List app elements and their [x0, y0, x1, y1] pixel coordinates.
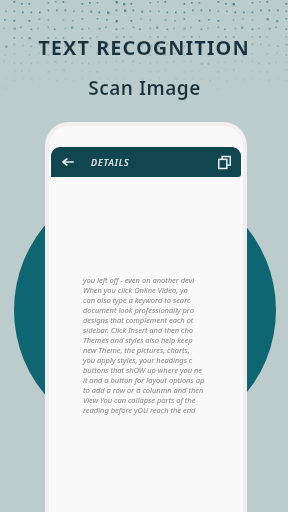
staticText: you left off - even on another devi [83, 275, 195, 285]
staticText: When you click Online Video, yo [83, 285, 188, 295]
button[interactable]: Copy [214, 152, 234, 172]
staticText: you apply styles, your headings c [83, 355, 193, 365]
staticText: sidebar. Click Insert and then cho [83, 325, 194, 335]
staticText: DETAILS [91, 156, 130, 168]
button[interactable]: Back [58, 152, 78, 172]
staticText: Themes and styles also help keep [83, 335, 193, 345]
staticText: document look professionally pro [83, 305, 194, 315]
staticText: buttons that shOW up where you ne [83, 365, 203, 375]
staticText: Scan Image [88, 75, 201, 101]
staticText: it and a button for layout options ap [83, 375, 205, 385]
staticText: to add a row or a colunmn and then [83, 385, 204, 395]
staticText: can also type a keyword to searc [83, 295, 191, 305]
staticText: reading before yOU reach the end [83, 405, 196, 415]
staticText: TEXT RECOGNITION [38, 34, 250, 61]
staticText: designs that complement each ot [83, 315, 194, 325]
staticText: new Theme, the pictures, charts, [83, 345, 190, 355]
staticText: View You can collapse parts of the [83, 395, 196, 405]
